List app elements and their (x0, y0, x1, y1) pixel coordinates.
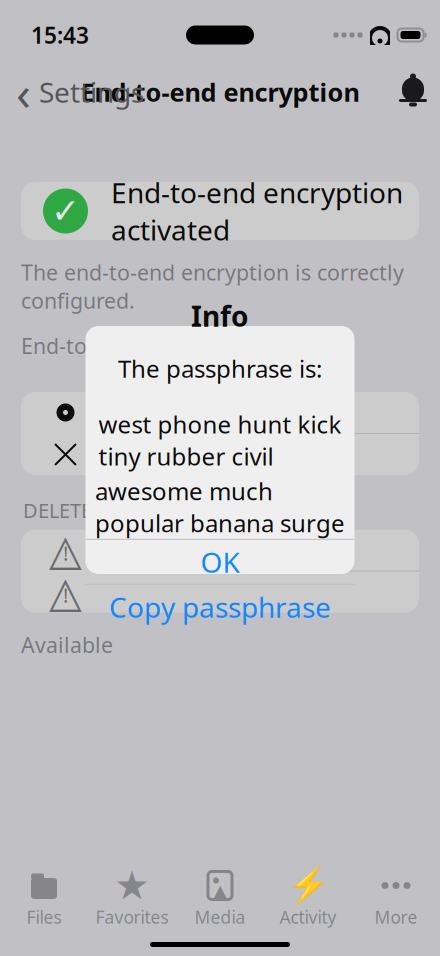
staticText: △ (49, 526, 82, 574)
button[interactable]: Remove the encryption locally (21, 434, 419, 475)
staticText: ▲ (212, 880, 227, 903)
staticText: The end-to-end encryption is correctly c… (21, 258, 404, 315)
staticText: Read passphrase (111, 394, 333, 431)
staticText: Available (21, 630, 113, 659)
staticText: ✓ (51, 191, 80, 231)
staticText: west phone hunt kick tiny rubber civil (98, 408, 341, 472)
staticText: End-to-end encryption activated (111, 174, 403, 248)
staticText: More (374, 905, 417, 928)
staticText: The passphrase is: (118, 352, 322, 384)
staticText: ⚡ (286, 866, 329, 905)
staticText: Files (26, 905, 61, 928)
button[interactable]: ‹ (0, 65, 160, 119)
staticText: OK (200, 543, 239, 580)
staticText: Info (191, 297, 249, 334)
staticText: Settings (39, 73, 144, 111)
button[interactable]: Read passphrase (21, 392, 419, 433)
staticText: ‹ (16, 60, 31, 124)
staticText: awesome much popular banana surge (95, 475, 345, 539)
staticText: Remove the encryption locally (111, 417, 339, 492)
staticText: DELETE (23, 497, 92, 524)
staticText: Favorites (95, 905, 168, 928)
button[interactable]: OK (85, 540, 354, 584)
staticText: Copy passphrase (109, 588, 331, 625)
staticText: End-to-end encryption (80, 75, 359, 109)
staticText: ! (63, 540, 68, 566)
button[interactable]: ▲ (176, 870, 264, 930)
button[interactable]: Notifications (386, 65, 440, 119)
staticText: End-to-End Encryption 2.0 (21, 332, 282, 360)
button[interactable]: More (352, 870, 440, 930)
staticText: 15:43 (31, 20, 89, 50)
staticText: △ (49, 568, 82, 616)
staticText: ★ (114, 863, 150, 908)
button[interactable]: Copy passphrase (85, 585, 354, 629)
staticText: Media (194, 905, 245, 928)
button[interactable]: ★ (88, 870, 176, 930)
button[interactable]: ⚡ (264, 870, 352, 930)
staticText: Activity (279, 905, 336, 928)
staticText: ! (63, 582, 68, 608)
button[interactable]: Files (0, 870, 88, 930)
